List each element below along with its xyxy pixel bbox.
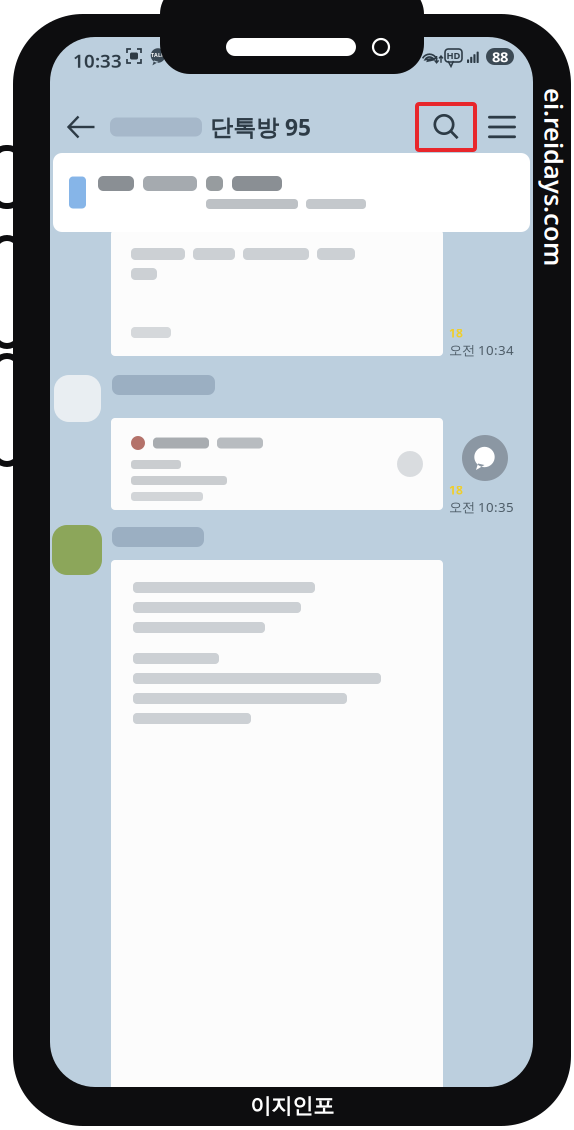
staticText: 10:33	[73, 48, 122, 73]
button[interactable]: Back	[62, 104, 100, 150]
button[interactable]: Menu	[487, 104, 517, 150]
staticText: 18	[449, 482, 463, 498]
staticText: 단톡방 95	[210, 112, 311, 142]
staticText: 오전 10:34	[449, 341, 514, 359]
button[interactable]	[53, 153, 530, 232]
staticText: 오전 10:35	[449, 498, 514, 516]
button[interactable]: Search	[417, 104, 475, 150]
staticText: 88	[492, 47, 508, 66]
staticText: 18	[449, 325, 463, 341]
staticText: ei.reidays.com	[459, 166, 574, 200]
staticText: TALK	[151, 51, 165, 59]
staticText: HD	[446, 49, 460, 62]
staticText: 이지인포	[250, 1093, 334, 1119]
